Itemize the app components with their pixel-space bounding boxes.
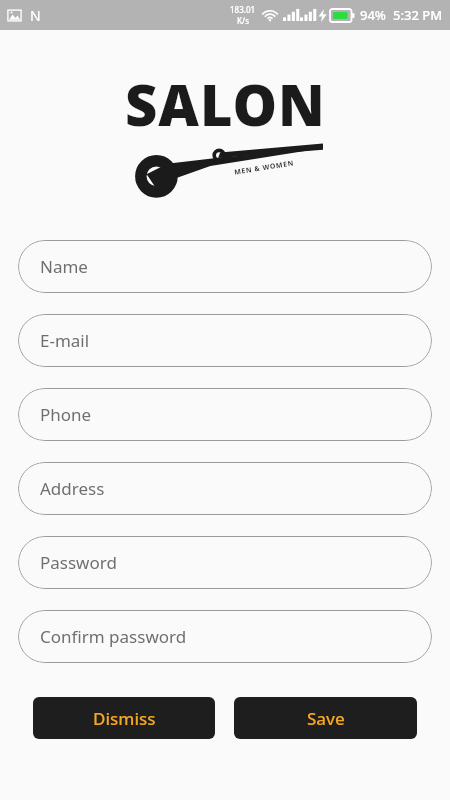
staticText: 183.01 bbox=[230, 4, 256, 15]
other: Signal bbox=[300, 9, 314, 21]
staticText: 5:32 PM bbox=[393, 6, 443, 24]
staticText: Dismiss bbox=[93, 707, 156, 730]
staticText: Address bbox=[40, 477, 105, 500]
staticText: Confirm password bbox=[40, 625, 187, 648]
button[interactable]: Save bbox=[234, 697, 417, 739]
other: Screenshot bbox=[7, 8, 22, 23]
staticText: Password bbox=[40, 551, 117, 574]
button[interactable]: Name bbox=[18, 240, 432, 293]
button[interactable]: Phone bbox=[18, 388, 432, 441]
other: Battery bbox=[330, 9, 355, 22]
button[interactable]: Address bbox=[18, 462, 432, 515]
staticText: Save bbox=[307, 707, 345, 730]
staticText: N bbox=[30, 6, 41, 25]
button[interactable]: Password bbox=[18, 536, 432, 589]
staticText: E-mail bbox=[40, 329, 90, 352]
staticText: 94% bbox=[360, 6, 386, 24]
staticText: SALON bbox=[125, 66, 326, 142]
staticText: K/s bbox=[237, 15, 250, 26]
staticText: Phone bbox=[40, 403, 92, 426]
staticText: Name bbox=[40, 255, 88, 278]
button[interactable]: Dismiss bbox=[33, 697, 215, 739]
other: Signal bbox=[283, 9, 297, 21]
other: Wi-Fi bbox=[262, 9, 278, 22]
button[interactable]: Confirm password bbox=[18, 610, 432, 663]
button[interactable]: E-mail bbox=[18, 314, 432, 367]
staticText: MEN & WOMEN bbox=[234, 158, 295, 178]
